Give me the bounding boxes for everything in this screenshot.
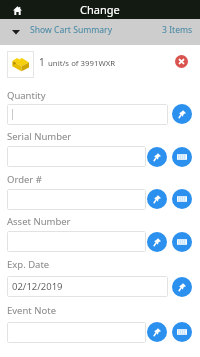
- button[interactable]: Scan Order #: [172, 189, 192, 209]
- button[interactable]: Pin Exp. Date: [172, 277, 192, 297]
- button[interactable]: Pin Serial Number: [147, 147, 167, 167]
- staticText: Exp. Date: [7, 258, 50, 271]
- staticText: Event Note: [7, 304, 56, 317]
- button[interactable]: 02/12/2019: [7, 276, 168, 297]
- button[interactable]: Pin Order #: [147, 189, 167, 209]
- staticText: 3 Items: [162, 24, 193, 36]
- staticText: Show Cart Summary: [30, 24, 113, 36]
- staticText: 1: [39, 55, 48, 69]
- button[interactable]: [7, 104, 168, 125]
- staticText: unit/s of 3991WXR: [48, 58, 116, 69]
- button[interactable]: [7, 231, 146, 252]
- button[interactable]: Scan Event Note: [172, 322, 192, 342]
- staticText: 02/12/2019: [12, 280, 63, 293]
- staticText: Change: [80, 2, 120, 17]
- button[interactable]: Scan Serial Number: [172, 147, 192, 167]
- button[interactable]: Pin Quantity: [172, 104, 192, 124]
- button[interactable]: [7, 189, 146, 210]
- staticText: Asset Number: [7, 215, 71, 228]
- button[interactable]: Show Cart Summary: [0, 19, 200, 45]
- button[interactable]: Scan Asset Number: [172, 232, 192, 252]
- staticText: Order #: [7, 173, 42, 186]
- staticText: Serial Number: [7, 130, 72, 143]
- button[interactable]: Remove item: [175, 55, 188, 68]
- button[interactable]: Home: [8, 1, 26, 19]
- staticText: Quantity: [7, 89, 46, 102]
- button[interactable]: Pin Event Note: [147, 322, 167, 342]
- button[interactable]: Pin Asset Number: [147, 232, 167, 252]
- button[interactable]: [7, 322, 146, 343]
- button[interactable]: [7, 146, 146, 167]
